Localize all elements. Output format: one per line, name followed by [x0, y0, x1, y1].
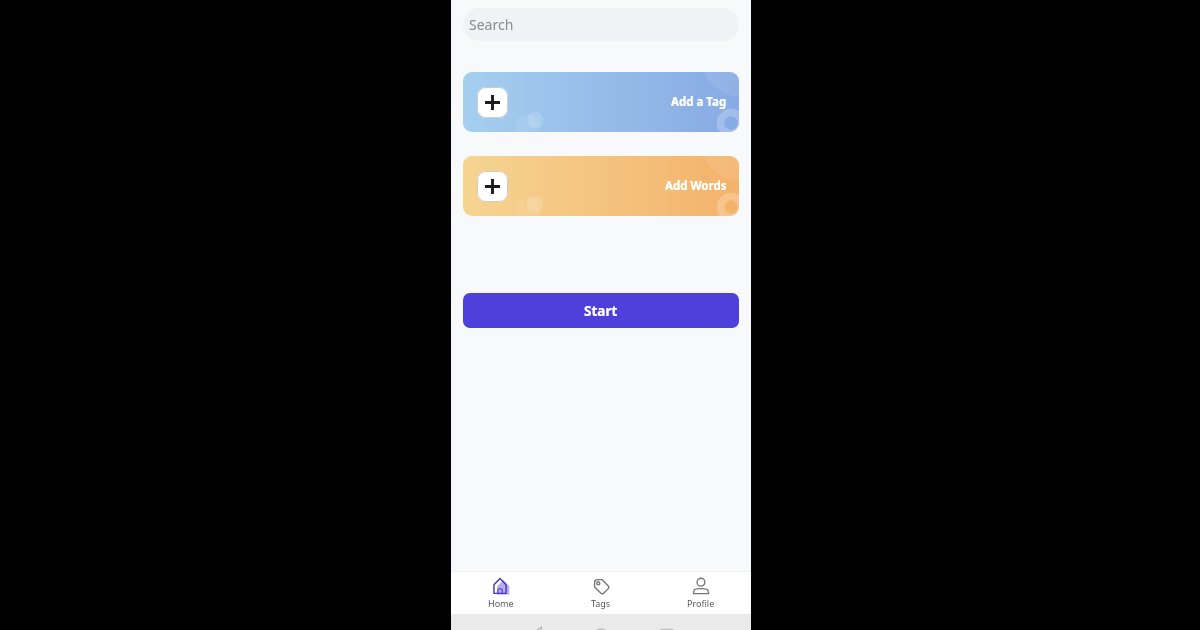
- button[interactable]: Add Words: [477, 171, 508, 202]
- button[interactable]: Add a Tag: [463, 72, 739, 132]
- button[interactable]: Home: [451, 572, 551, 614]
- staticText: Tags: [591, 597, 611, 609]
- button[interactable]: Add Words: [463, 156, 739, 216]
- button[interactable]: Search: [463, 8, 739, 41]
- staticText: Add Words: [665, 178, 727, 194]
- button[interactable]: Add a Tag: [477, 87, 508, 118]
- button[interactable]: Start: [463, 293, 739, 328]
- staticText: Start: [584, 302, 618, 320]
- staticText: Add a Tag: [671, 94, 727, 110]
- staticText: Profile: [687, 597, 715, 609]
- button[interactable]: Profile: [651, 572, 751, 614]
- button[interactable]: Tags: [551, 572, 651, 614]
- staticText: Home: [488, 597, 514, 609]
- staticText: Search: [469, 15, 514, 34]
